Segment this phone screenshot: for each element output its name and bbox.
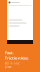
staticText: Fast. (5, 50, 14, 55)
staticText: All in one (5, 62, 20, 65)
staticText: place. (5, 65, 13, 69)
staticText: Frictionless. (5, 55, 29, 61)
